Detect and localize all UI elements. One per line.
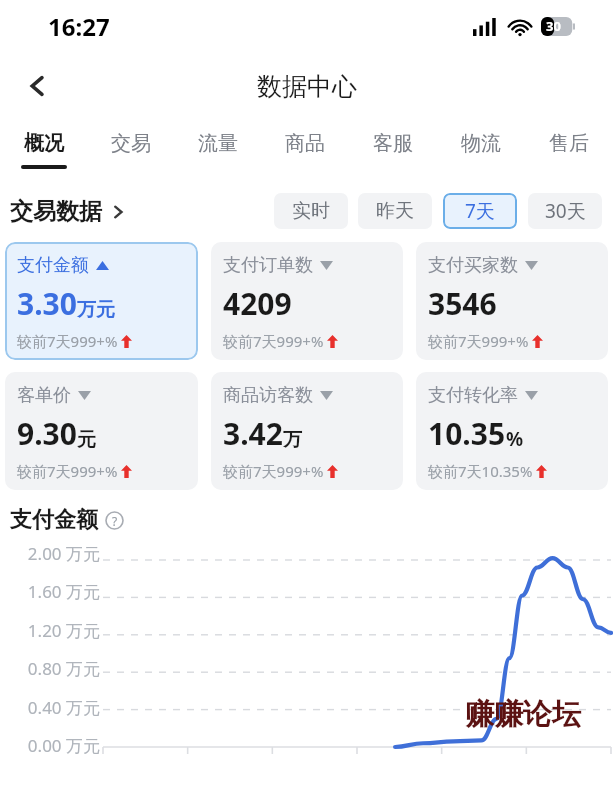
staticText: 4209 xyxy=(223,283,292,324)
other: Help xyxy=(105,511,124,530)
staticText: 较前7天999+% xyxy=(223,331,324,351)
staticText: 交易 xyxy=(111,131,151,156)
button[interactable]: 30天 xyxy=(528,193,602,229)
staticText: 元 xyxy=(77,428,96,452)
staticText: 支付买家数 xyxy=(428,254,518,277)
staticText: 较前7天999+% xyxy=(17,331,118,351)
staticText: 较前7天999+% xyxy=(428,331,529,351)
button[interactable]: 商品 xyxy=(261,120,349,180)
staticText: 2.00 万元 xyxy=(8,542,100,565)
staticText: 支付金额 xyxy=(17,254,89,277)
staticText: 1.20 万元 xyxy=(8,619,100,642)
staticText: 30天 xyxy=(545,198,586,224)
button[interactable]: 客服 xyxy=(349,120,437,180)
staticText: 数据中心 xyxy=(257,71,357,102)
staticText: 3.42 xyxy=(223,413,283,454)
staticText: 3546 xyxy=(428,283,497,324)
staticText: 概况 xyxy=(24,131,64,156)
staticText: 0.80 万元 xyxy=(8,657,100,680)
button[interactable]: 客单价 xyxy=(5,372,198,490)
button[interactable]: 流量 xyxy=(174,120,261,180)
staticText: 实时 xyxy=(292,199,330,223)
button[interactable]: 支付买家数 xyxy=(416,242,608,360)
staticText: 较前7天10.35% xyxy=(428,461,533,481)
staticText: 0.00 万元 xyxy=(8,734,100,757)
button[interactable]: 支付金额 xyxy=(5,242,198,360)
button[interactable]: 交易 xyxy=(87,120,174,180)
button[interactable]: 概况 xyxy=(0,120,87,180)
staticText: 支付转化率 xyxy=(428,384,518,407)
button[interactable]: 7天 xyxy=(443,193,517,229)
staticText: 昨天 xyxy=(376,199,414,223)
button[interactable]: 交易数据 xyxy=(10,197,125,226)
staticText: 交易数据 xyxy=(10,197,102,226)
staticText: 售后 xyxy=(549,131,589,156)
staticText: 客单价 xyxy=(17,384,71,407)
button[interactable]: 实时 xyxy=(274,193,348,229)
button[interactable]: 支付金额 xyxy=(10,506,124,534)
staticText: 10.35 xyxy=(428,413,506,454)
staticText: 1.60 万元 xyxy=(8,580,100,603)
staticText: 16:27 xyxy=(48,10,110,43)
staticText: 9.30 xyxy=(17,413,77,454)
staticText: 30 xyxy=(546,17,561,35)
button[interactable]: Back xyxy=(14,62,62,110)
staticText: 较前7天999+% xyxy=(17,461,118,481)
button[interactable]: 售后 xyxy=(525,120,613,180)
staticText: 7天 xyxy=(465,198,495,224)
staticText: 客服 xyxy=(373,131,413,156)
staticText: 赚赚论坛 xyxy=(465,696,581,733)
staticText: 万 xyxy=(283,428,302,452)
staticText: 商品 xyxy=(285,131,325,156)
staticText: 支付订单数 xyxy=(223,254,313,277)
staticText: 物流 xyxy=(461,131,501,156)
staticText: 万元 xyxy=(77,298,115,322)
staticText: % xyxy=(506,426,524,452)
staticText: 支付金额 xyxy=(10,506,98,534)
button[interactable]: 昨天 xyxy=(358,193,432,229)
button[interactable]: 支付订单数 xyxy=(211,242,403,360)
staticText: 0.40 万元 xyxy=(8,696,100,719)
staticText: 3.30 xyxy=(17,283,77,324)
button[interactable]: 商品访客数 xyxy=(211,372,403,490)
staticText: ? xyxy=(112,513,118,529)
staticText: 流量 xyxy=(198,131,238,156)
staticText: 较前7天999+% xyxy=(223,461,324,481)
button[interactable]: 物流 xyxy=(437,120,525,180)
button[interactable]: 支付转化率 xyxy=(416,372,608,490)
staticText: 商品访客数 xyxy=(223,384,313,407)
